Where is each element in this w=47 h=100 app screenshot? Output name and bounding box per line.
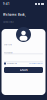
staticText: Sign in to continue (3, 21, 14, 23)
staticText: LOGIN (19, 68, 27, 72)
button[interactable]: Forgot Password? (29, 63, 43, 64)
button[interactable]: LOGIN (4, 67, 43, 73)
staticText: Remember me (7, 63, 17, 64)
button[interactable]: Remember me (4, 62, 17, 64)
staticText: Welcome Back, (3, 13, 26, 16)
staticText: 9:41 (3, 2, 10, 6)
staticText: Phone / Email (4, 52, 12, 54)
staticText: Enter Name (4, 44, 12, 46)
staticText: Forgot Password? (29, 63, 43, 64)
